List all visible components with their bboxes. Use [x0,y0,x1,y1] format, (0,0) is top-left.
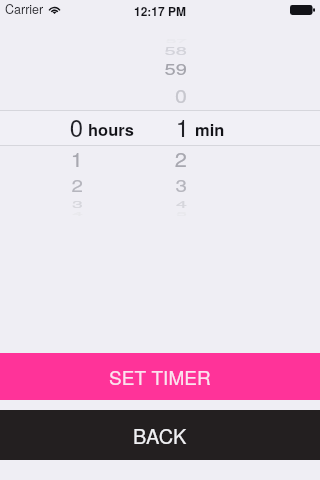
staticText: 0 [125,81,187,105]
other: Battery [290,5,315,15]
other: Wi-Fi [48,5,61,14]
staticText: 59 [128,57,187,77]
staticText: Carrier [5,0,44,18]
button[interactable]: BACK [0,410,320,460]
staticText: 58 [128,42,187,56]
staticText: hours [88,117,134,141]
staticText: 1 [19,144,83,168]
staticText: 3 [127,173,187,193]
staticText: 12:17 PM [134,2,187,19]
staticText: SET TIMER [109,363,211,390]
button[interactable]: SET TIMER [0,353,320,400]
staticText: 0 [23,109,83,139]
staticText: min [195,117,225,141]
staticText: 1 [129,109,189,139]
staticText: 2 [23,173,83,193]
staticText: BACK [133,421,187,450]
staticText: 2 [123,144,187,168]
staticText: 3 [26,197,83,209]
staticText: 4 [130,197,187,209]
